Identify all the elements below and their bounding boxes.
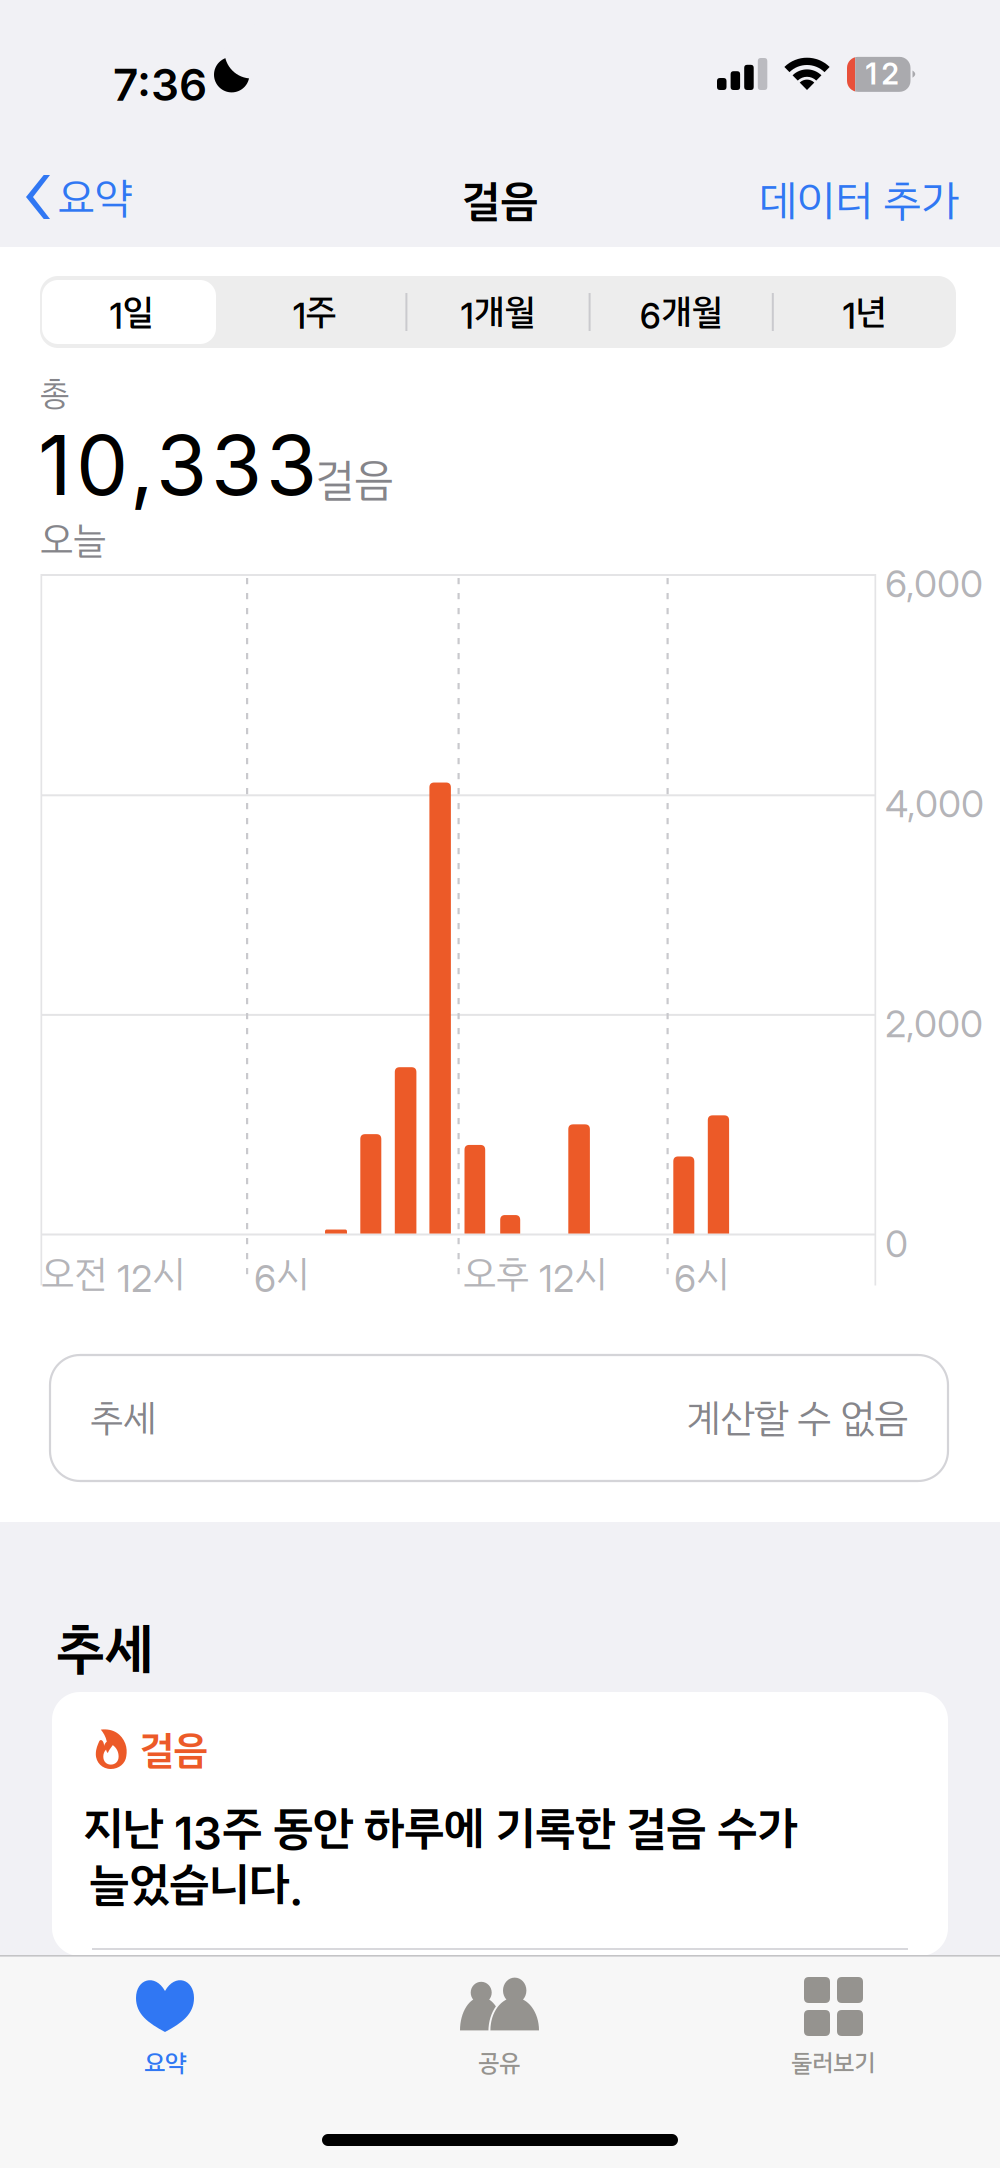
staticText: 6,000 bbox=[885, 561, 983, 606]
staticText: 6시 bbox=[254, 1246, 309, 1302]
button[interactable]: 6개월 bbox=[590, 276, 773, 348]
button[interactable]: 추세 bbox=[50, 1355, 948, 1481]
staticText: 걸음 bbox=[462, 169, 538, 233]
button[interactable]: 둘러보기 bbox=[790, 2045, 876, 2081]
staticText: 4,000 bbox=[885, 781, 984, 826]
staticText: 공유 bbox=[478, 2045, 520, 2081]
button[interactable]: 1년 bbox=[773, 276, 956, 348]
staticText: 2,000 bbox=[885, 1001, 983, 1046]
staticText: 지난 13주 동안 하루에 기록한 걸음 수가 bbox=[83, 1794, 797, 1862]
staticText: 1개월 bbox=[460, 286, 535, 338]
staticText: 추세 bbox=[56, 1608, 154, 1690]
staticText: 둘러보기 bbox=[791, 2045, 875, 2081]
staticText: 6개월 bbox=[640, 286, 723, 338]
staticText: 0 bbox=[885, 1221, 908, 1266]
button[interactable]: 요약 bbox=[24, 166, 132, 228]
button[interactable]: 요약 bbox=[125, 2045, 205, 2081]
button[interactable]: 공유 bbox=[459, 2045, 539, 2081]
staticText: 오전 12시 bbox=[41, 1246, 185, 1302]
staticText: 계산할 수 없음 bbox=[686, 1389, 908, 1447]
staticText: 늘었습니다. bbox=[89, 1850, 303, 1918]
staticText: 데이터 추가 bbox=[759, 169, 959, 233]
staticText: 1주 bbox=[293, 286, 337, 338]
staticText: 10,333 bbox=[38, 415, 317, 515]
staticText: 1일 bbox=[110, 286, 154, 338]
staticText: 총 bbox=[40, 368, 70, 418]
button[interactable]: 1개월 bbox=[406, 276, 590, 348]
staticText: 12 bbox=[865, 56, 899, 92]
staticText: 오후 12시 bbox=[463, 1246, 607, 1302]
staticText: 1년 bbox=[842, 286, 886, 338]
button[interactable]: 1일 bbox=[40, 276, 223, 348]
staticText: 7:36 bbox=[113, 58, 207, 111]
staticText: 요약 bbox=[144, 2045, 186, 2081]
staticText: 요약 bbox=[58, 167, 132, 229]
staticText: 걸음 bbox=[139, 1721, 207, 1779]
button[interactable]: 1주 bbox=[223, 276, 406, 348]
staticText: 걸음 bbox=[315, 447, 393, 513]
staticText: 6시 bbox=[674, 1246, 729, 1302]
button[interactable]: 데이터 추가 bbox=[759, 169, 959, 233]
staticText: 추세 bbox=[90, 1390, 156, 1446]
staticText: 오늘 bbox=[40, 512, 106, 568]
